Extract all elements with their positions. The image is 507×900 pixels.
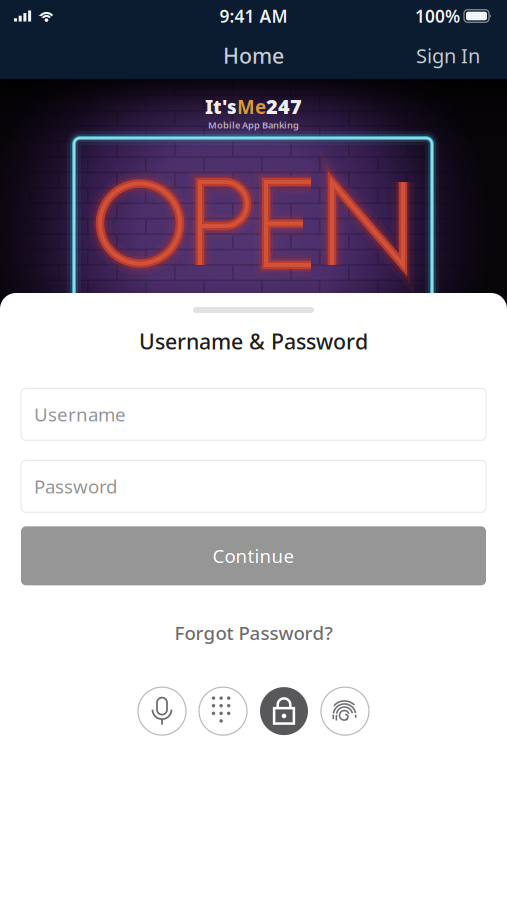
button[interactable]: Voice sign in [138, 687, 186, 735]
staticText: Forgot Password? [174, 620, 332, 645]
staticText: 247 [266, 93, 302, 120]
button[interactable]: Continue [21, 526, 486, 585]
button[interactable]: PIN keypad [199, 687, 247, 735]
staticText: Mobile App Banking [208, 119, 299, 131]
button[interactable]: Sign In [402, 34, 507, 77]
staticText: Home [223, 41, 284, 70]
button[interactable]: Touch ID [321, 687, 369, 735]
staticText: Username & Password [139, 327, 368, 355]
staticText: 9:41 AM [219, 4, 287, 27]
button[interactable]: Password sign in [260, 687, 308, 735]
staticText: Sign In [416, 42, 480, 69]
staticText: It's [205, 94, 237, 119]
staticText: Continue [212, 543, 294, 568]
staticText: 100% [415, 4, 460, 27]
staticText: Username [34, 402, 126, 427]
staticText: Password [34, 474, 117, 499]
button[interactable]: Forgot Password? [164, 612, 342, 653]
staticText: Me [237, 94, 266, 119]
